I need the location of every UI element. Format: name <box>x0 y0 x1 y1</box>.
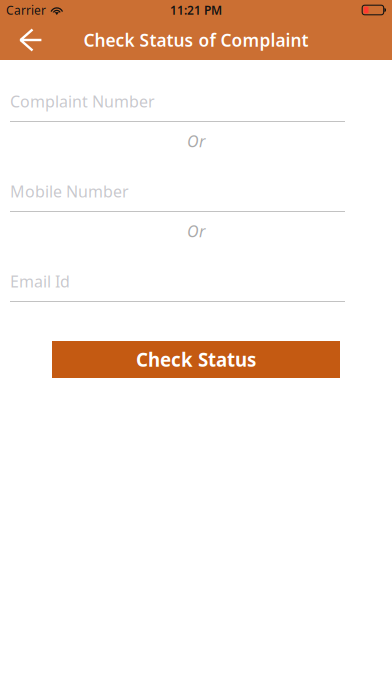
staticText: Check Status of Complaint <box>83 28 308 51</box>
staticText: Complaint Number <box>10 91 155 112</box>
staticText: Carrier <box>6 2 46 18</box>
button[interactable]: Mobile Number <box>10 178 382 212</box>
staticText: Or <box>187 220 205 242</box>
button[interactable]: Back <box>0 20 54 60</box>
staticText: Mobile Number <box>10 181 129 202</box>
button[interactable]: Email Id <box>10 268 382 302</box>
button[interactable]: Complaint Number <box>10 88 382 122</box>
staticText: Check Status <box>136 347 256 372</box>
button[interactable]: Check Status <box>52 341 340 378</box>
staticText: Email Id <box>10 271 70 292</box>
staticText: 11:21 PM <box>170 2 222 18</box>
staticText: Or <box>187 130 205 152</box>
